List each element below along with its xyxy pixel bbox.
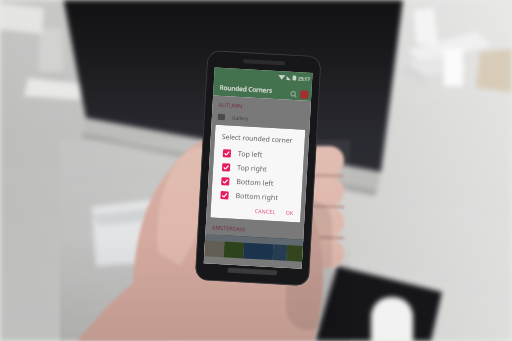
staticText: Top right — [237, 163, 267, 175]
staticText: Gallery — [232, 115, 249, 122]
button[interactable]: OK — [283, 207, 296, 218]
button[interactable]: CANCEL — [252, 205, 278, 217]
staticText: OK — [285, 209, 294, 216]
staticText: Rounded Corners — [219, 83, 273, 95]
button[interactable]: Bottom left — [219, 174, 298, 192]
staticText: AMSTERDAM — [212, 224, 246, 232]
button[interactable]: Search — [288, 89, 299, 99]
button[interactable]: Top right — [220, 160, 298, 178]
staticText: Bottom left — [236, 177, 275, 189]
button[interactable]: Delete — [298, 88, 310, 100]
staticText: 25:17 — [298, 75, 310, 82]
button[interactable]: Bottom right — [218, 188, 297, 206]
staticText: Select rounded corner — [222, 132, 293, 145]
button[interactable]: 25:17 — [0, 0, 512, 341]
staticText: Top left — [238, 149, 263, 160]
staticText: Bottom right — [235, 191, 279, 203]
button[interactable]: Top left — [220, 146, 299, 164]
staticText: CANCEL — [255, 207, 276, 215]
staticText: AUTUMN — [218, 101, 243, 109]
